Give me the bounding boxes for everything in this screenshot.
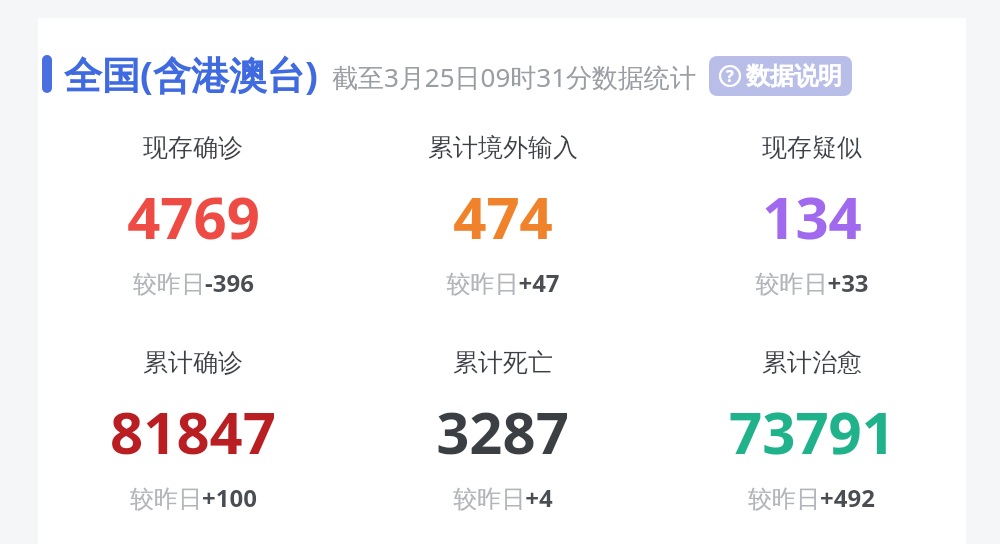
staticText: 累计境外输入: [428, 132, 578, 163]
staticText: 较昨日-396: [133, 266, 254, 299]
staticText: 81847: [110, 392, 276, 471]
staticText: 较昨日+492: [748, 481, 875, 514]
staticText: 较昨日+4: [453, 481, 553, 514]
staticText: 累计治愈: [762, 347, 862, 378]
button[interactable]: ?: [709, 56, 852, 96]
button[interactable]: 累计确诊: [38, 347, 348, 514]
button[interactable]: 累计死亡: [348, 347, 657, 514]
button[interactable]: 现存确诊: [38, 132, 348, 299]
staticText: 全国(含港澳台): [64, 48, 318, 100]
staticText: 累计确诊: [143, 347, 243, 378]
button[interactable]: 累计治愈: [657, 347, 966, 514]
staticText: 134: [762, 177, 862, 256]
staticText: ?: [726, 65, 734, 87]
staticText: 累计死亡: [453, 347, 553, 378]
staticText: 较昨日+100: [130, 481, 257, 514]
staticText: 4769: [127, 177, 260, 256]
staticText: 数据说明: [746, 61, 842, 91]
staticText: 较昨日+33: [755, 266, 869, 299]
staticText: 截至3月25日09时31分数据统计: [332, 59, 697, 95]
staticText: 3287: [436, 392, 569, 471]
button[interactable]: 现存疑似: [657, 132, 966, 299]
button[interactable]: 累计境外输入: [348, 132, 657, 299]
staticText: 现存疑似: [762, 132, 862, 163]
staticText: 较昨日+47: [446, 266, 560, 299]
staticText: 73791: [729, 392, 895, 471]
staticText: 现存确诊: [143, 132, 243, 163]
staticText: 474: [453, 177, 553, 256]
